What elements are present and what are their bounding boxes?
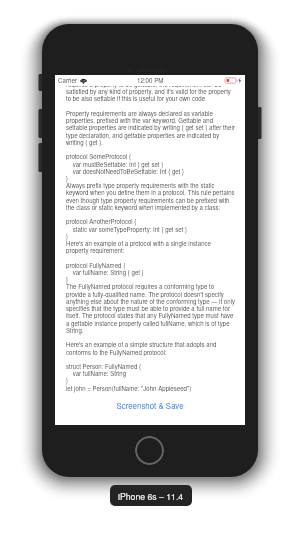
staticText: protocol AnotherProtocol {: [66, 217, 137, 226]
staticText: Always prefix type property requirements…: [66, 181, 215, 190]
staticText: property requirement:: [66, 246, 125, 255]
staticText: properties, prefixed with the var keywor…: [66, 116, 214, 125]
staticText: protocol SomeProtocol {: [66, 152, 132, 161]
staticText: 12:00 PM: [137, 76, 164, 85]
button[interactable]: Home: [135, 436, 164, 465]
staticText: The FullyNamed protocol requires a confo…: [66, 282, 215, 291]
staticText: settable properties are indicated by wri…: [66, 123, 235, 132]
staticText: }: [66, 376, 69, 385]
staticText: static var someTypeProperty: Int { get s…: [66, 225, 188, 234]
staticText: provide a fully-qualified name. The prot…: [66, 290, 224, 299]
staticText: a gettable instance property called full…: [66, 319, 230, 328]
staticText: satisfied by any kind of property, and i…: [66, 87, 231, 96]
staticText: specifies that the type must be able to …: [66, 304, 230, 313]
staticText: Here's an example of a protocol with a s…: [66, 239, 211, 248]
staticText: writing { get }.: [66, 138, 103, 147]
staticText: var mustBeSettable: Int { get set }: [66, 160, 164, 169]
staticText: Carrier: [58, 76, 77, 85]
staticText: the class or static keyword when impleme…: [66, 203, 221, 212]
button[interactable]: Screenshot & Save: [55, 400, 245, 411]
button[interactable]: iPhone 6s – 11.4: [110, 485, 192, 506]
staticText: Here's an example of a simple structure …: [66, 340, 217, 349]
staticText: itself. The protocol states that any Ful…: [66, 311, 234, 320]
staticText: var doesNotNeedToBeSettable: Int { get }: [66, 167, 185, 176]
staticText: }: [66, 174, 69, 183]
staticText: to be also settable if this is useful fo…: [66, 94, 207, 103]
staticText: }: [66, 275, 69, 284]
staticText: type declaration, and gettable propertie…: [66, 131, 220, 140]
staticText: protocol FullyNamed {: [66, 261, 126, 270]
staticText: String.: [66, 326, 84, 335]
staticText: Property requirements are always declare…: [66, 109, 213, 118]
staticText: keyword when you define them in a protoc…: [66, 188, 235, 197]
staticText: conforms to the FullyNamed protocol:: [66, 348, 167, 357]
staticText: var fullName: String { get }: [66, 268, 144, 277]
staticText: anything else about the nature of the co…: [66, 297, 235, 306]
staticText: requires a property to be gettable, the …: [66, 80, 222, 89]
staticText: struct Person: FullyNamed {: [66, 362, 142, 371]
staticText: var fullName: String: [66, 369, 127, 378]
staticText: let john = Person(fullName: "John Apples…: [66, 384, 192, 393]
staticText: iPhone 6s – 11.4: [118, 490, 184, 502]
staticText: Screenshot & Save: [116, 400, 184, 411]
staticText: even though type property requirements c…: [66, 196, 230, 205]
staticText: }: [66, 232, 69, 241]
